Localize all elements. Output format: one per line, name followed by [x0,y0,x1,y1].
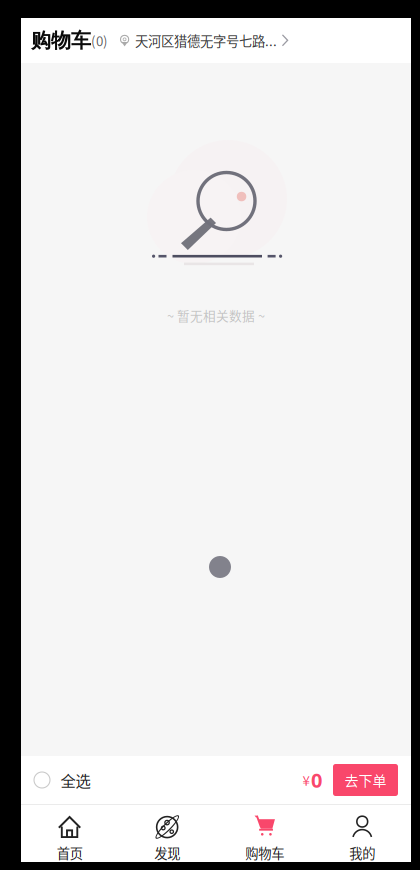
button[interactable]: 发现 [118,804,216,862]
button[interactable]: 天河区猎德无字号七路... [119,31,289,50]
staticText: 全选 [60,769,90,791]
staticText: 我的 [349,843,375,862]
button[interactable]: 我的 [313,804,411,862]
button[interactable]: 首页 [21,804,118,862]
button[interactable]: 去下单 [333,764,398,796]
staticText: 去下单 [344,770,386,790]
staticText: (0) [91,31,108,50]
button[interactable]: 全选 [34,759,90,801]
staticText: 0 [311,766,322,794]
staticText: 购物车 [31,28,91,53]
staticText: ¥ [302,770,309,790]
staticText: 购物车 [245,843,284,862]
staticText: 天河区猎德无字号七路... [135,31,277,50]
button[interactable]: 购物车 [216,804,313,862]
staticText: 首页 [57,843,83,862]
staticText: ~ 暂无相关数据 ~ [167,306,265,324]
staticText: 发现 [154,843,180,862]
